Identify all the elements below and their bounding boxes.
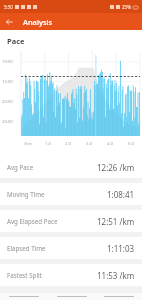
button[interactable]: Home xyxy=(48,293,95,300)
staticText: 5.0 xyxy=(128,141,134,147)
staticText: Analysis xyxy=(23,17,53,27)
staticText: 15:00 xyxy=(2,79,13,85)
staticText: Elapsed Time xyxy=(7,244,46,252)
staticText: /km xyxy=(24,141,32,147)
staticText: 11:53 /km xyxy=(97,270,135,281)
staticText: 4.0 xyxy=(107,141,113,147)
staticText: 10:00 xyxy=(2,59,13,65)
staticText: 25% xyxy=(122,4,131,10)
staticText: Avg Pace xyxy=(7,163,34,171)
button[interactable]: Elapsed Time xyxy=(0,237,142,259)
button[interactable]: Back xyxy=(0,293,48,300)
staticText: Moving Time xyxy=(7,190,45,198)
staticText: 1:08:41 xyxy=(107,189,135,200)
button[interactable]: Avg Pace xyxy=(0,156,142,178)
staticText: 3.0 xyxy=(86,141,92,147)
staticText: Avg Elapsed Pace xyxy=(7,217,58,225)
button[interactable]: Moving Time xyxy=(0,183,142,205)
staticText: 1:11:03 xyxy=(107,243,135,254)
staticText: 5:50 xyxy=(4,4,13,10)
button[interactable]: Back xyxy=(0,13,17,30)
staticText: 12:26 /km xyxy=(97,162,135,173)
staticText: 20:00 xyxy=(2,99,13,105)
staticText: Pace xyxy=(7,36,25,46)
button[interactable]: Fastest Split xyxy=(0,264,142,286)
button[interactable]: Avg Elapsed Pace xyxy=(0,210,142,232)
staticText: 12:51 /km xyxy=(97,216,135,227)
staticText: 2.0 xyxy=(65,141,71,147)
staticText: 25:00 xyxy=(2,119,13,125)
button[interactable]: Recents xyxy=(95,293,142,300)
staticText: Fastest Split xyxy=(7,271,42,279)
staticText: 1.0 xyxy=(45,141,51,147)
